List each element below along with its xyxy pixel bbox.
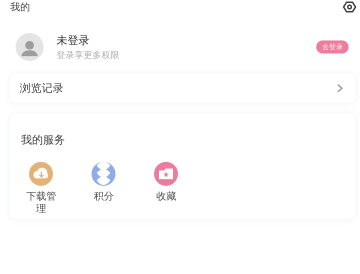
staticText: 浏览记录 xyxy=(20,81,64,95)
staticText: 登录享更多权限 xyxy=(57,49,120,61)
button[interactable]: Settings xyxy=(343,0,356,14)
staticText: 下载管理 xyxy=(26,190,56,215)
staticText: 积分 xyxy=(93,190,113,202)
staticText: 收藏 xyxy=(156,190,176,202)
button[interactable]: 去登录 xyxy=(316,40,349,53)
staticText: 我的服务 xyxy=(21,133,65,147)
button[interactable]: 积分 xyxy=(83,162,123,204)
button[interactable]: 下载管理 xyxy=(21,162,61,204)
button[interactable]: 浏览记录 xyxy=(10,74,355,102)
button[interactable]: 收藏 xyxy=(146,162,186,204)
staticText: 去登录 xyxy=(322,43,343,51)
staticText: 未登录 xyxy=(57,33,90,47)
staticText: 我的 xyxy=(10,1,30,13)
